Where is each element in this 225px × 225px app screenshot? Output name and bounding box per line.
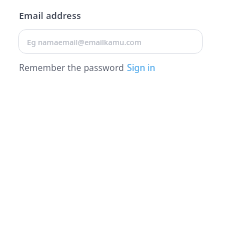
staticText: Email address	[19, 9, 82, 21]
staticText: Remember the password	[19, 62, 124, 74]
button[interactable]: Sign in	[127, 62, 156, 74]
button[interactable]: Email address input	[18, 29, 203, 54]
staticText: Sign in	[127, 62, 156, 74]
staticText: Eg namaemail@emailkamu.com	[27, 37, 142, 47]
